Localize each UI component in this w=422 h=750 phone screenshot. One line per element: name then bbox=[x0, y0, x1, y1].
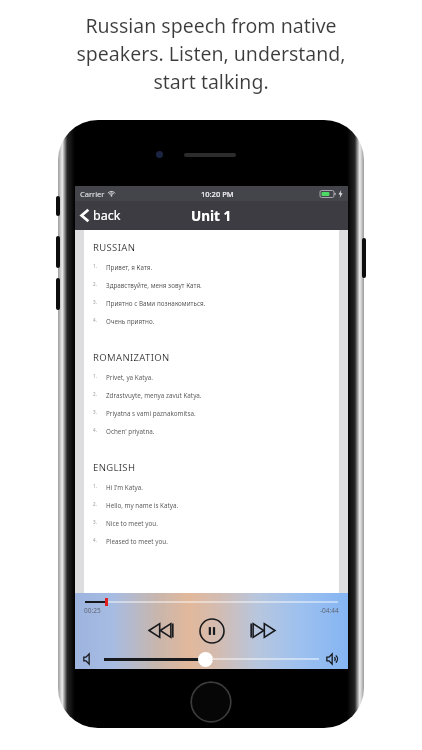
staticText: Priyatna s vami paznakomitsa. bbox=[106, 409, 196, 418]
button[interactable]: Volume bbox=[198, 652, 213, 667]
staticText: Здравствуйте, меня зовут Катя. bbox=[106, 281, 202, 290]
staticText: 1. bbox=[93, 483, 97, 489]
staticText: back bbox=[93, 207, 121, 224]
staticText: Привет, я Катя. bbox=[106, 263, 153, 272]
staticText: Unit 1 bbox=[191, 207, 232, 225]
staticText: Очень приятно. bbox=[106, 317, 155, 326]
button[interactable]: Fast forward bbox=[246, 615, 280, 646]
staticText: ROMANIZATION bbox=[93, 351, 170, 364]
staticText: Приятно с Вами познакомиться. bbox=[106, 299, 206, 308]
staticText: 1. bbox=[93, 263, 97, 269]
staticText: 00:25 bbox=[84, 606, 101, 615]
button[interactable]: Pause bbox=[196, 615, 228, 646]
staticText: Ochen' priyatna. bbox=[106, 427, 155, 436]
button[interactable]: Home bbox=[190, 681, 232, 723]
staticText: Hello, my name is Katya. bbox=[106, 501, 179, 510]
button[interactable]: Volume down bbox=[83, 652, 97, 666]
staticText: 1. bbox=[93, 373, 97, 379]
staticText: 2. bbox=[93, 501, 97, 507]
button[interactable]: Rewind bbox=[144, 615, 178, 646]
staticText: 3. bbox=[93, 519, 97, 525]
staticText: 3. bbox=[93, 409, 97, 415]
staticText: ENGLISH bbox=[93, 461, 136, 474]
staticText: Carrier bbox=[80, 189, 105, 199]
staticText: -04:44 bbox=[320, 606, 339, 615]
staticText: Pleased to meet you. bbox=[106, 537, 168, 546]
button[interactable]: Volume up bbox=[326, 652, 340, 666]
staticText: 2. bbox=[93, 391, 97, 397]
staticText: 4. bbox=[93, 317, 97, 323]
staticText: 4. bbox=[93, 427, 97, 433]
staticText: 2. bbox=[93, 281, 97, 287]
button[interactable]: back bbox=[75, 203, 131, 228]
staticText: 4. bbox=[93, 537, 97, 543]
staticText: Privet, ya Katya. bbox=[106, 373, 153, 382]
staticText: Russian speech from native speakers. Lis… bbox=[76, 12, 346, 95]
staticText: Nice to meet you. bbox=[106, 519, 158, 528]
staticText: 10:20 PM bbox=[201, 189, 234, 199]
staticText: Hi I'm Katya. bbox=[106, 483, 143, 492]
staticText: Zdrastvuyte, menya zavut Katya. bbox=[106, 391, 202, 400]
staticText: 3. bbox=[93, 299, 97, 305]
staticText: RUSSIAN bbox=[93, 241, 136, 254]
